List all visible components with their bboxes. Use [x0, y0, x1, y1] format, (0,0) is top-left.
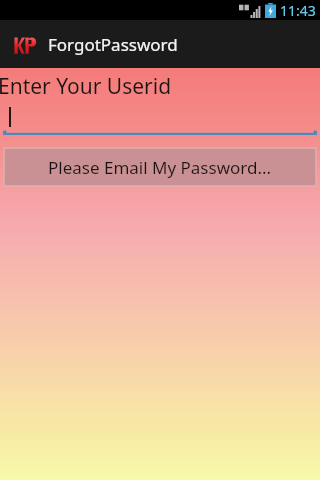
staticText: ForgotPassword	[48, 33, 178, 56]
staticText: Please Email My Password...	[48, 156, 272, 179]
button[interactable]	[0, 102, 320, 136]
staticText: Enter Your Userid	[0, 72, 172, 101]
staticText: 11:43	[280, 1, 316, 20]
button[interactable]: Please Email My Password...	[4, 148, 316, 186]
